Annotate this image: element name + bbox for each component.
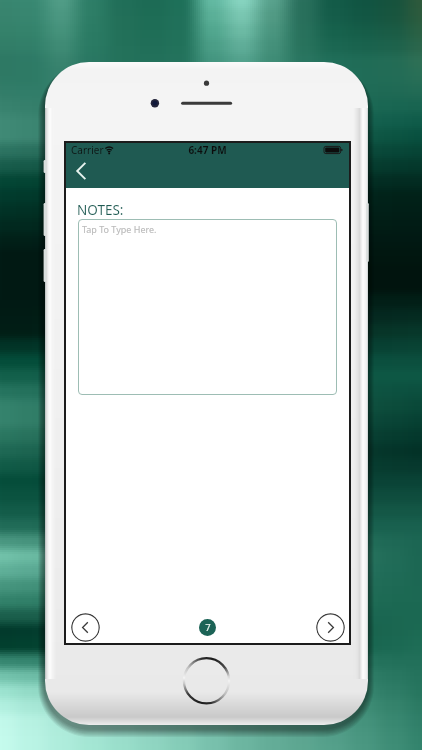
button[interactable]: Back xyxy=(70,159,94,183)
button[interactable]: 7 xyxy=(199,619,216,636)
staticText: Carrier xyxy=(71,143,104,157)
staticText: 6:47 PM xyxy=(66,143,349,157)
button[interactable]: Tap To Type Here. xyxy=(78,219,337,395)
staticText: 7 xyxy=(205,621,211,634)
staticText: NOTES: xyxy=(77,201,124,219)
staticText: Tap To Type Here. xyxy=(82,223,157,235)
button[interactable]: Previous xyxy=(71,613,100,642)
button[interactable]: Next xyxy=(316,613,345,642)
